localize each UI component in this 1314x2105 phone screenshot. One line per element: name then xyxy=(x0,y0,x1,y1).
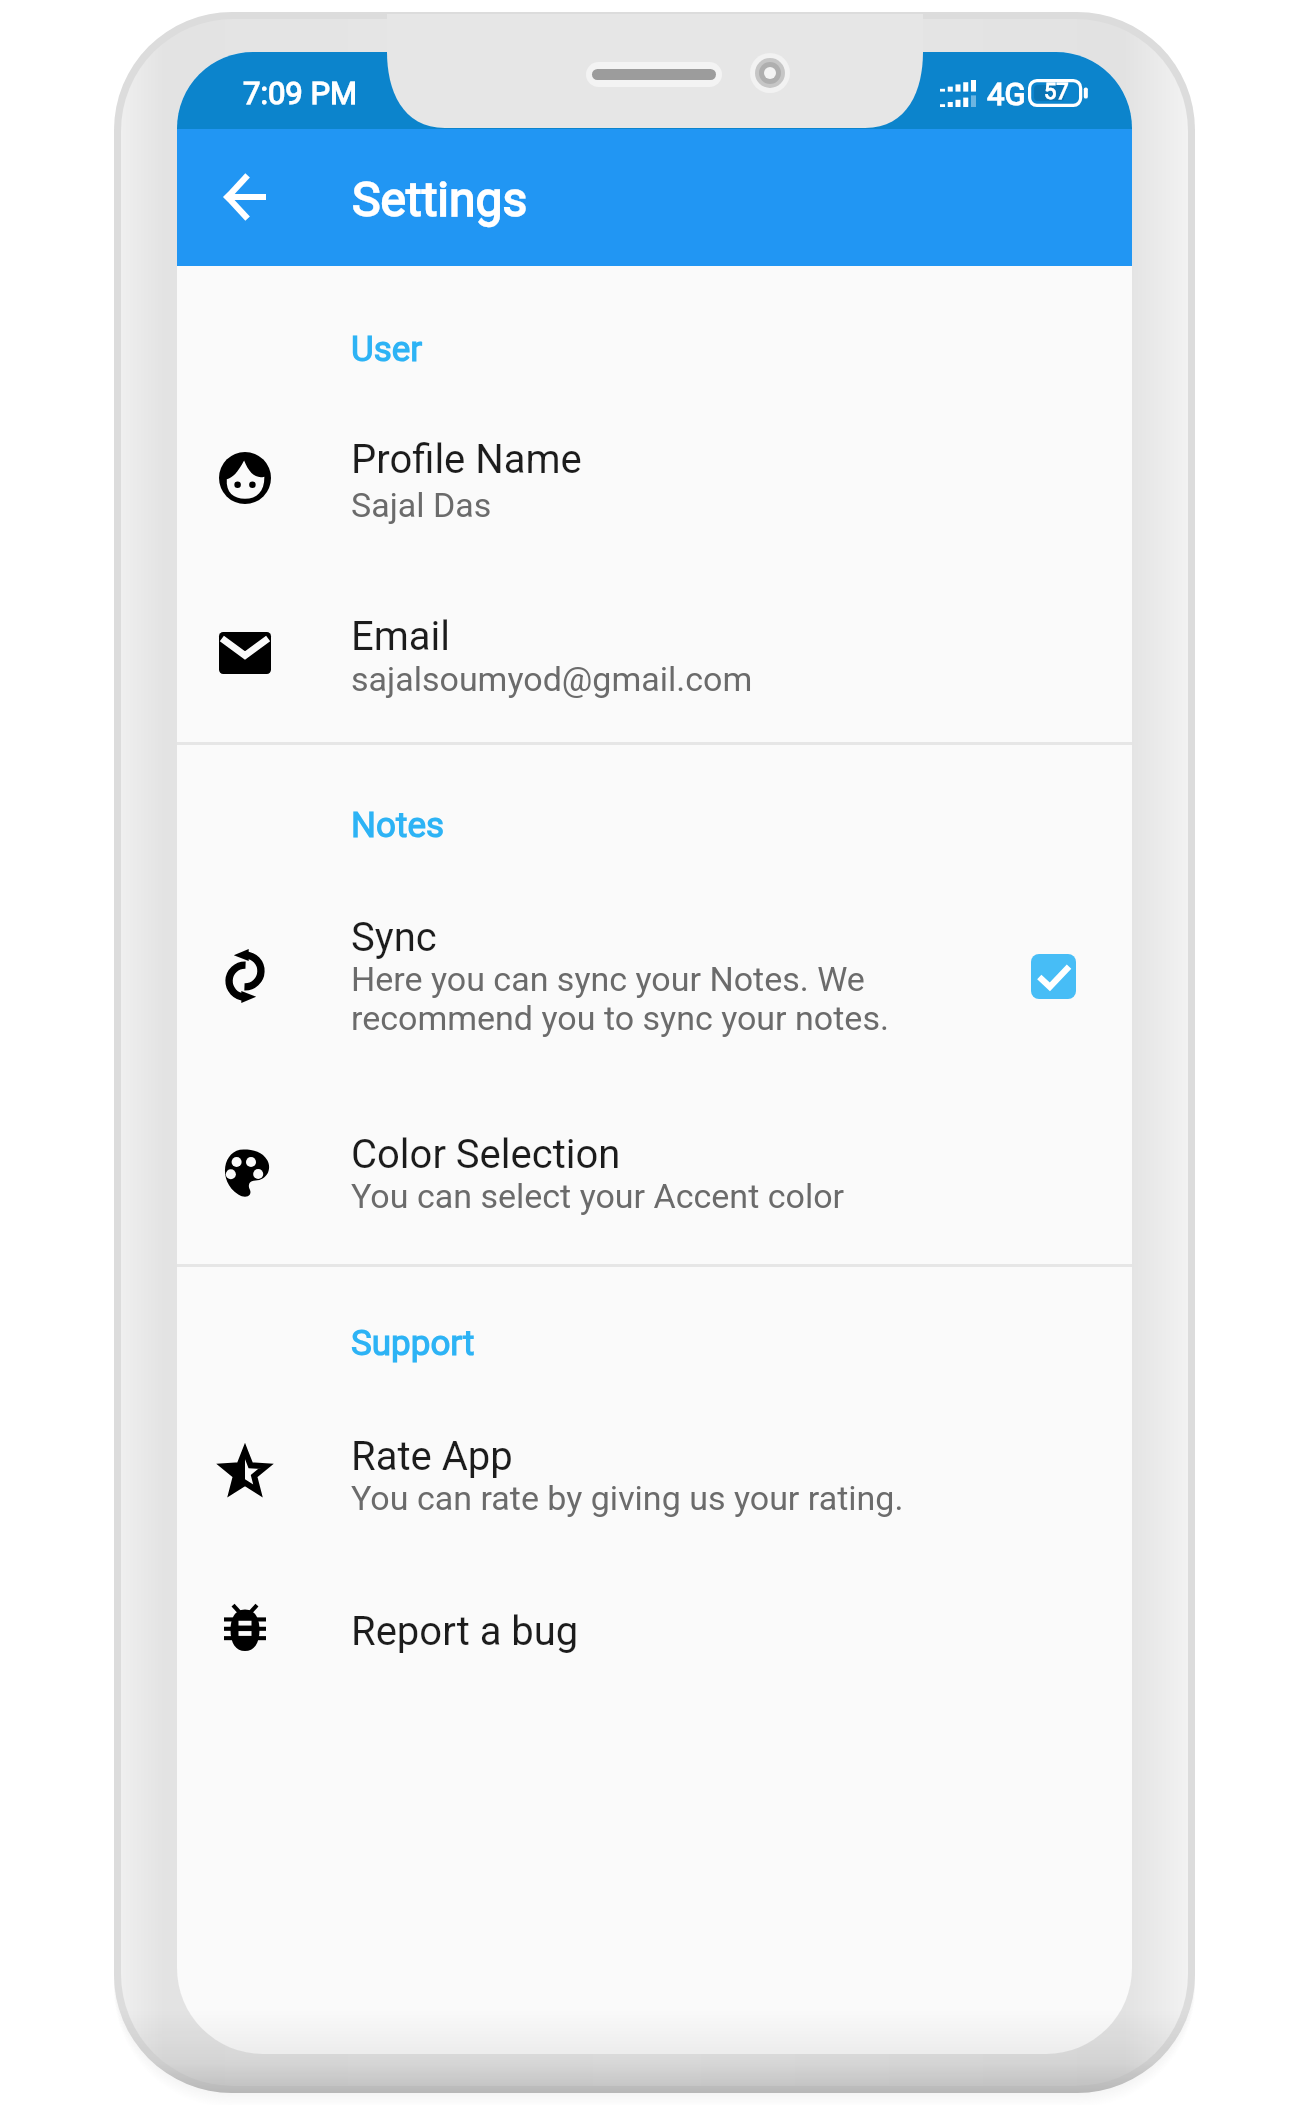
staticText: Rate App xyxy=(351,1433,513,1480)
staticText: Color Selection xyxy=(351,1131,621,1178)
staticText: You can rate by giving us your rating. xyxy=(351,1478,904,1518)
staticText: Profile Name xyxy=(351,436,582,483)
staticText: Sync xyxy=(351,914,437,961)
staticText: 4G xyxy=(987,76,1026,112)
staticText: Email xyxy=(351,613,451,660)
button[interactable] xyxy=(177,1400,1132,1550)
staticText: Here you can sync your Notes. We recomme… xyxy=(351,959,889,1038)
staticText: Sajal Das xyxy=(351,485,492,525)
staticText: Report a bug xyxy=(351,1608,579,1655)
staticText: 57 xyxy=(1044,79,1069,105)
staticText: sajalsoumyod@gmail.com xyxy=(351,659,753,699)
staticText: Settings xyxy=(352,171,528,227)
button[interactable]: Sync enabled xyxy=(1031,954,1076,999)
button[interactable] xyxy=(177,1100,1132,1250)
staticText: Support xyxy=(351,1323,475,1364)
staticText: You can select your Accent color xyxy=(351,1176,845,1216)
button[interactable] xyxy=(177,1570,1132,1690)
button[interactable] xyxy=(177,890,1132,1060)
button[interactable] xyxy=(177,400,1132,560)
staticText: Notes xyxy=(351,805,445,846)
button[interactable]: Back xyxy=(209,161,281,233)
button[interactable] xyxy=(177,580,1132,730)
staticText: 7:09 PM xyxy=(243,75,358,111)
staticText: User xyxy=(351,329,423,370)
